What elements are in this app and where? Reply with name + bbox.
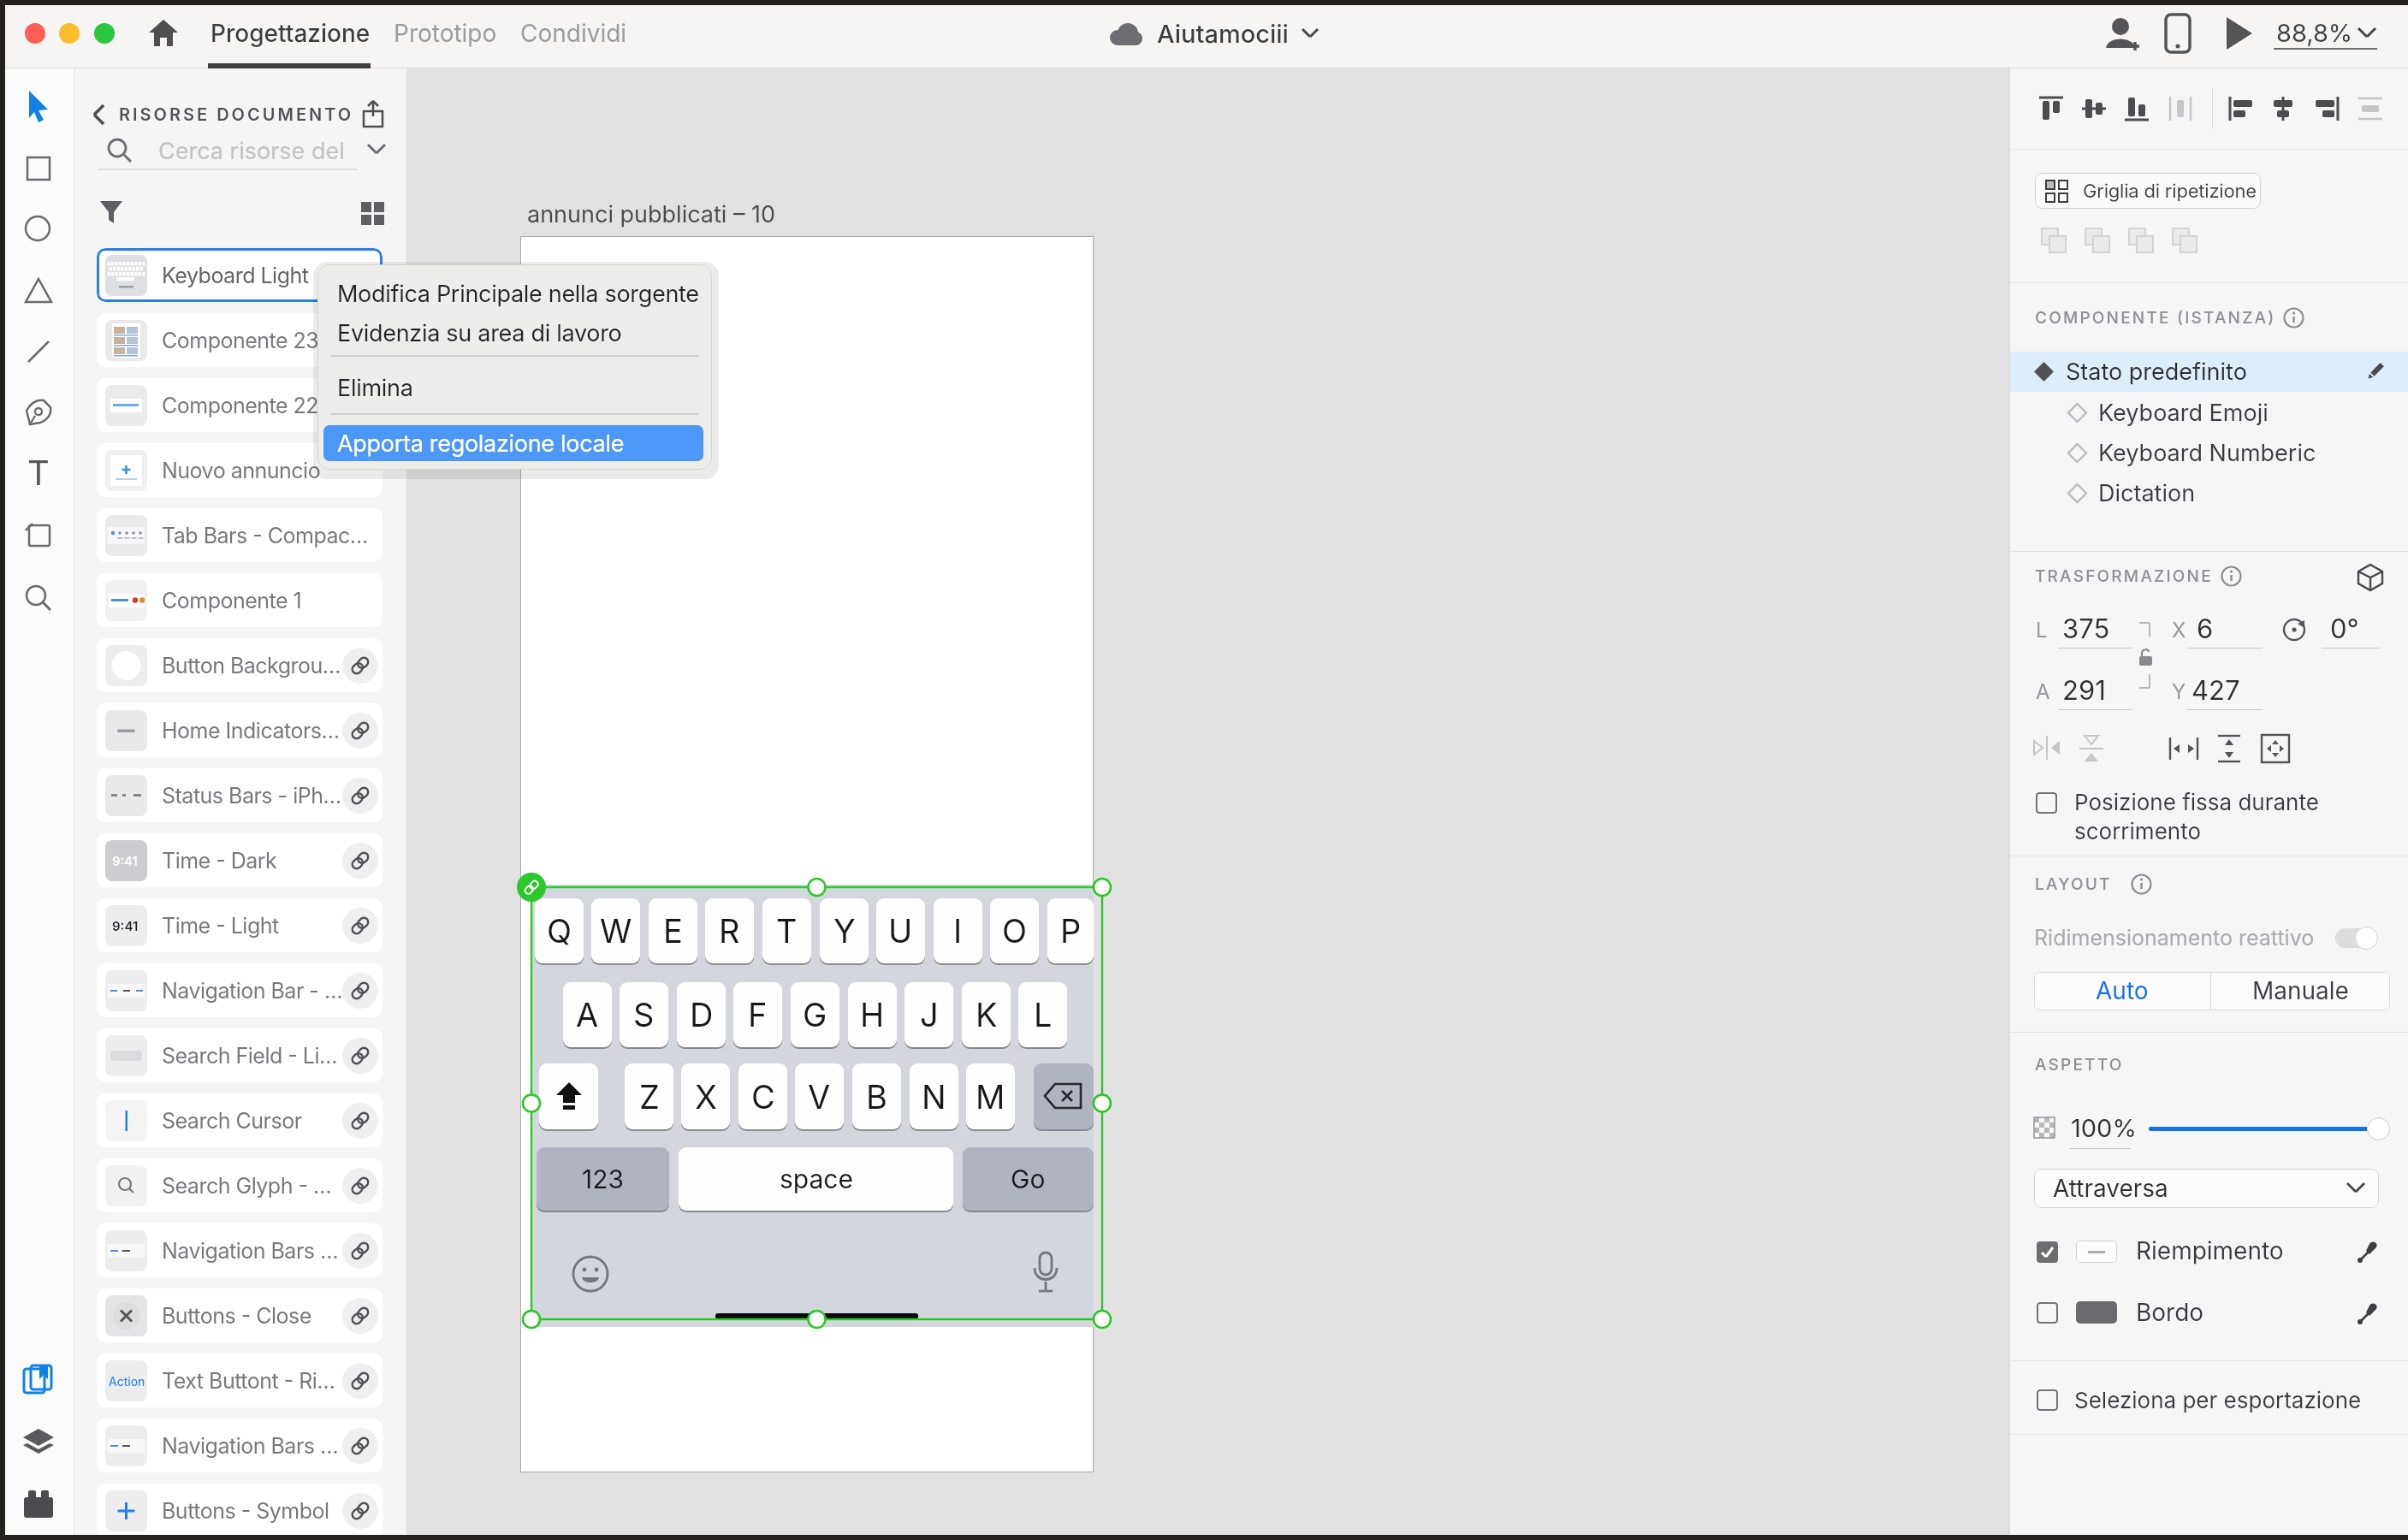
button[interactable] [342,973,378,1009]
button[interactable] [97,1028,383,1082]
button[interactable] [2010,352,2408,392]
staticText: Navigation Bars - iP... [162,1433,343,1459]
button[interactable] [325,314,705,350]
button[interactable] [354,195,392,233]
staticText: scorrimento [2074,818,2201,844]
button[interactable] [1147,7,1318,63]
button[interactable] [2210,972,2390,1010]
button[interactable] [94,23,115,44]
staticText: L [1034,995,1053,1034]
button[interactable] [2010,433,2408,472]
button[interactable] [97,1484,383,1537]
button[interactable] [2037,1389,2058,1411]
button[interactable] [97,573,383,627]
button[interactable] [2032,90,2070,127]
staticText: Modifica Principale nella sorgente [337,280,699,308]
button[interactable] [97,248,383,302]
staticText: Manuale [2252,976,2349,1005]
button[interactable] [17,1360,58,1401]
button[interactable] [97,443,383,497]
button[interactable] [97,508,383,562]
button[interactable] [2034,1169,2379,1208]
staticText: D [690,995,714,1034]
button[interactable] [325,370,705,406]
button[interactable] [323,425,703,461]
button[interactable] [97,768,383,822]
button[interactable] [342,778,378,814]
button[interactable] [2162,90,2199,127]
button[interactable] [342,1233,378,1269]
button[interactable] [342,908,378,944]
button[interactable] [342,1493,378,1529]
button[interactable] [2351,1234,2387,1270]
button[interactable] [342,1038,378,1074]
button[interactable] [17,86,58,127]
button[interactable] [97,1223,383,1277]
button[interactable] [94,128,398,173]
button[interactable] [2118,90,2156,127]
button[interactable] [342,1363,378,1399]
button[interactable] [97,1158,383,1212]
staticText: Evidenzia su area di lavoro [337,319,622,347]
staticText: Componente 22 [162,393,319,418]
staticText: J [920,995,939,1034]
button[interactable] [2075,90,2113,127]
button[interactable] [390,7,486,63]
button[interactable] [342,713,378,749]
staticText: O [1002,911,1028,951]
button[interactable] [92,192,133,234]
button[interactable] [2335,928,2378,948]
button[interactable] [97,378,383,432]
button[interactable] [342,1168,378,1204]
button[interactable] [2037,1302,2058,1324]
button[interactable] [97,1353,383,1407]
staticText: V [808,1077,831,1116]
staticText: LAYOUT [2035,874,2112,894]
button[interactable] [2222,90,2260,127]
button[interactable] [2367,1117,2390,1140]
button[interactable] [97,1288,383,1342]
button[interactable] [2352,90,2389,127]
staticText: L [2036,618,2048,643]
button[interactable] [517,7,620,63]
button[interactable] [97,898,383,952]
staticText: R [719,911,740,951]
button[interactable] [351,92,395,137]
button[interactable] [17,1422,58,1463]
staticText: Condividi [520,19,627,48]
staticText: Tab Bars - Compact - Li... [162,523,374,548]
button[interactable] [2010,473,2408,512]
staticText: T [27,452,50,493]
button[interactable] [25,23,45,44]
button[interactable] [2036,792,2057,814]
button[interactable] [325,275,705,311]
button[interactable] [97,1093,383,1147]
button[interactable] [2308,90,2346,127]
button[interactable] [59,23,80,44]
button[interactable] [342,648,378,684]
button[interactable] [97,703,383,757]
button[interactable] [97,638,383,692]
staticText: Seleziona per esportazione [2074,1387,2362,1413]
button[interactable] [2034,972,2210,1010]
button[interactable] [97,1419,383,1472]
button[interactable] [97,313,383,367]
button[interactable] [17,1485,58,1526]
button[interactable] [2010,393,2408,432]
button[interactable] [342,1103,378,1139]
button[interactable] [2216,9,2259,60]
button[interactable] [97,833,383,887]
button[interactable] [97,963,383,1017]
button[interactable] [342,843,378,879]
staticText: Navigation Bar - iP... [162,978,343,1004]
button[interactable] [2351,1295,2387,1331]
button[interactable] [2035,173,2261,209]
staticText: F [748,995,768,1034]
button[interactable] [208,7,362,63]
button[interactable] [2037,1241,2058,1263]
staticText: K [976,995,998,1034]
button[interactable] [342,1428,378,1464]
button[interactable] [2264,90,2302,127]
button[interactable] [342,1298,378,1334]
staticText: 9:41 [112,918,139,933]
